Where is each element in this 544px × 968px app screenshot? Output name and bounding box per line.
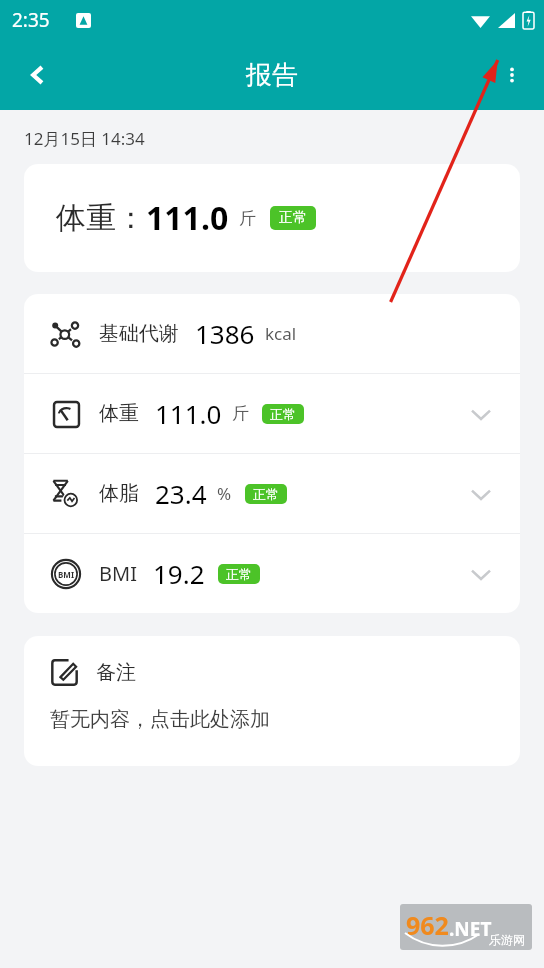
staticText: 正常 [253, 486, 279, 502]
other: Expand 体重 [466, 399, 496, 429]
other: Expand 体脂 [466, 479, 496, 509]
staticText: BMI [58, 569, 74, 580]
staticText: 备注 [96, 660, 136, 685]
staticText: 暂无内容，点击此处添加 [50, 707, 270, 732]
staticText: 斤 [239, 208, 256, 229]
staticText: 19.2 [153, 556, 205, 591]
staticText: 2:35 [12, 7, 50, 33]
staticText: 正常 [270, 406, 296, 422]
staticText: 111.0 [146, 196, 229, 240]
staticText: 111.0 [155, 396, 222, 431]
staticText: .NET [449, 916, 492, 942]
staticText: kcal [265, 322, 297, 345]
button[interactable]: 体重 [24, 374, 520, 453]
staticText: 体重： [56, 199, 146, 237]
staticText: 基础代谢 [99, 321, 179, 346]
staticText: 12月15日 14:34 [24, 127, 145, 150]
other: Expand BMI [466, 559, 496, 589]
staticText: 1386 [195, 316, 255, 351]
button[interactable]: 体脂 [24, 454, 520, 533]
staticText: 正常 [226, 566, 252, 582]
button[interactable]: 基础代谢 [24, 294, 520, 373]
staticText: 报告 [246, 59, 298, 92]
staticText: 23.4 [155, 476, 207, 511]
staticText: % [217, 482, 232, 505]
staticText: 乐游网 [489, 932, 525, 947]
button[interactable]: Back [14, 51, 62, 99]
button[interactable]: BMI [24, 534, 520, 613]
button[interactable]: 备注 [24, 636, 520, 766]
staticText: 体重 [99, 401, 139, 426]
staticText: 体脂 [99, 481, 139, 506]
button[interactable]: More options [488, 51, 536, 99]
staticText: 正常 [279, 209, 307, 227]
staticText: BMI [99, 560, 137, 587]
staticText: 斤 [232, 403, 249, 424]
button[interactable]: 体重： [24, 164, 520, 272]
staticText: 962 [406, 908, 449, 942]
